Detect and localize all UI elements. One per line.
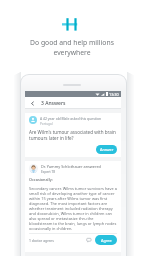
staticText: Agree (101, 238, 112, 243)
staticText: Answer (100, 147, 114, 152)
staticText: Secondary cancer. Wilms tumor survivors … (29, 186, 117, 231)
button[interactable]: Comment (86, 237, 92, 243)
staticText: everywhere (53, 48, 91, 57)
staticText: Are Wilm's tumour associated with brain … (29, 129, 116, 141)
staticText: Do good and help millions (30, 38, 114, 47)
staticText: Expert 78 (41, 170, 56, 174)
button[interactable]: Answer (96, 145, 117, 154)
button[interactable]: Agree (95, 235, 117, 245)
staticText: A 42 year old Male asked this question (40, 116, 102, 121)
staticText: 3 Answers (41, 100, 66, 107)
staticText: Portugal (40, 122, 53, 126)
button[interactable]: Back (28, 99, 37, 108)
staticText: Dr. Yummy Schlothauer answered (41, 164, 101, 169)
staticText: 13:30 (109, 92, 119, 97)
staticText: Occasionally: (29, 177, 53, 182)
staticText: 1 doctor agrees (29, 238, 54, 243)
